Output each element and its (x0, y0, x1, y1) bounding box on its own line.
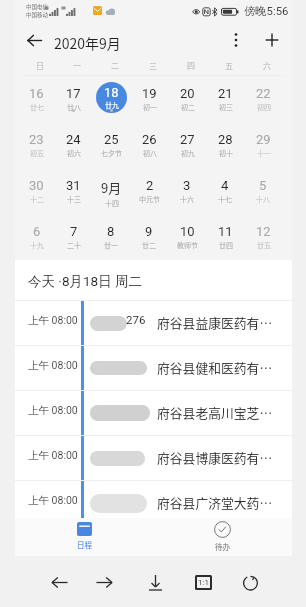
button[interactable]: 24 (55, 122, 92, 168)
button[interactable]: 6 (18, 214, 55, 260)
button[interactable]: 上午 08:00 (15, 436, 292, 480)
staticText: 上午 08:00 (28, 494, 78, 507)
staticText: 五 (225, 60, 233, 72)
button[interactable]: 19 (130, 76, 168, 122)
button[interactable]: 27 (168, 122, 206, 168)
button[interactable]: 12 (244, 214, 282, 260)
staticText: 二 (111, 60, 119, 72)
staticText: 府谷县广济堂大药… (157, 493, 273, 512)
staticText: 府谷县益康医药有… (157, 313, 273, 332)
button[interactable]: 9月 (92, 168, 130, 214)
button[interactable]: Back (43, 566, 75, 598)
staticText: 25 (104, 132, 119, 147)
staticText: 29 (256, 132, 271, 147)
staticText: 初二 (181, 102, 195, 112)
button[interactable]: Forward (88, 566, 120, 598)
staticText: 31 (66, 178, 81, 193)
button[interactable]: 16 (18, 76, 55, 122)
staticText: 廿七 (30, 102, 44, 112)
staticText: 一 (73, 60, 81, 72)
staticText: 廿一 (104, 240, 118, 250)
staticText: 初一 (143, 102, 157, 112)
staticText: 府谷县老高川宝芝… (157, 403, 273, 422)
button[interactable]: 25 (92, 122, 130, 168)
staticText: 28 (218, 132, 233, 147)
button[interactable]: Actual size (187, 566, 219, 598)
staticText: 廿八 (67, 102, 81, 112)
button[interactable]: More options (223, 27, 249, 53)
button[interactable]: 3 (168, 168, 206, 214)
staticText: 16 (29, 86, 44, 101)
button[interactable]: Add event (259, 27, 285, 53)
staticText: 教师节 (177, 240, 198, 250)
button[interactable]: 23 (18, 122, 55, 168)
button[interactable]: 5 (244, 168, 282, 214)
staticText: 日 (36, 60, 44, 72)
staticText: 23 (29, 132, 44, 147)
staticText: 22 (256, 86, 271, 101)
staticText: 府谷县博康医药有… (157, 448, 273, 467)
button[interactable]: 20 (168, 76, 206, 122)
staticText: 21 (218, 86, 233, 101)
button[interactable]: Back (21, 27, 47, 53)
staticText: 2 (146, 178, 154, 193)
staticText: 府谷县健和医药有… (157, 358, 273, 377)
staticText: 傍晚5:56 (244, 4, 289, 18)
staticText: 初八 (143, 148, 157, 158)
button[interactable]: 28 (206, 122, 244, 168)
staticText: 24 (66, 132, 81, 147)
staticText: 12 (256, 224, 271, 239)
staticText: 廿五 (257, 240, 271, 250)
staticText: 27 (180, 132, 195, 147)
button[interactable]: Refresh (234, 566, 266, 598)
staticText: 10 (180, 224, 195, 239)
button[interactable]: 26 (130, 122, 168, 168)
button[interactable]: 30 (18, 168, 55, 214)
button[interactable]: 4 (206, 168, 244, 214)
staticText: 廿九 (105, 100, 119, 110)
button[interactable]: 2 (130, 168, 168, 214)
button[interactable]: 日程 (15, 518, 153, 556)
button[interactable]: 上午 08:00 (15, 391, 292, 435)
button[interactable]: 21 (206, 76, 244, 122)
staticText: 十八 (256, 194, 270, 204)
staticText: 二十 (67, 240, 81, 250)
button[interactable]: 18 (92, 76, 130, 122)
staticText: 276 (126, 313, 146, 326)
button[interactable]: 17 (55, 76, 92, 122)
button[interactable]: 待办 (153, 518, 292, 556)
staticText: 9月 (101, 178, 122, 197)
button[interactable]: 29 (244, 122, 282, 168)
button[interactable]: 上午 08:00 (15, 301, 292, 345)
staticText: 8 (107, 224, 115, 239)
button[interactable]: 10 (168, 214, 206, 260)
button[interactable]: 9 (130, 214, 168, 260)
staticText: 待办 (215, 541, 230, 552)
staticText: 20 (180, 86, 195, 101)
staticText: 5 (259, 178, 267, 193)
staticText: 六 (263, 60, 271, 72)
staticText: 上午 08:00 (28, 359, 78, 372)
staticText: 中国移动 (26, 11, 49, 19)
staticText: 四 (187, 60, 195, 72)
button[interactable]: 上午 08:00 (15, 346, 292, 390)
staticText: 中国电信 (26, 3, 49, 11)
button[interactable]: 7 (55, 214, 92, 260)
button[interactable]: 22 (244, 76, 282, 122)
staticText: 4 (221, 178, 229, 193)
button[interactable]: 11 (206, 214, 244, 260)
button[interactable]: 31 (55, 168, 92, 214)
staticText: 上午 08:00 (28, 404, 78, 417)
button[interactable]: 8 (92, 214, 130, 260)
staticText: 十七 (218, 194, 232, 204)
button[interactable]: Download (139, 566, 171, 598)
staticText: 1:1 (198, 578, 209, 587)
staticText: 7 (70, 224, 78, 239)
staticText: 廿四 (219, 240, 233, 250)
staticText: 2020年9月 (54, 33, 121, 53)
button[interactable]: 上午 08:00 (15, 481, 292, 518)
staticText: 廿二 (142, 240, 156, 250)
staticText: 中元节 (139, 194, 160, 204)
staticText: 17 (66, 86, 81, 101)
staticText: 26 (142, 132, 157, 147)
